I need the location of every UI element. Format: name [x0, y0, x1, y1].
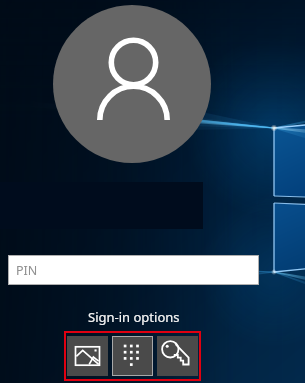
- button[interactable]: Picture password: [67, 336, 108, 376]
- staticText: PIN: [16, 262, 38, 279]
- button[interactable]: PIN: [112, 336, 153, 376]
- staticText: Sign-in options: [88, 308, 180, 326]
- button[interactable]: Password: [157, 336, 198, 376]
- button[interactable]: PIN: [9, 256, 258, 284]
